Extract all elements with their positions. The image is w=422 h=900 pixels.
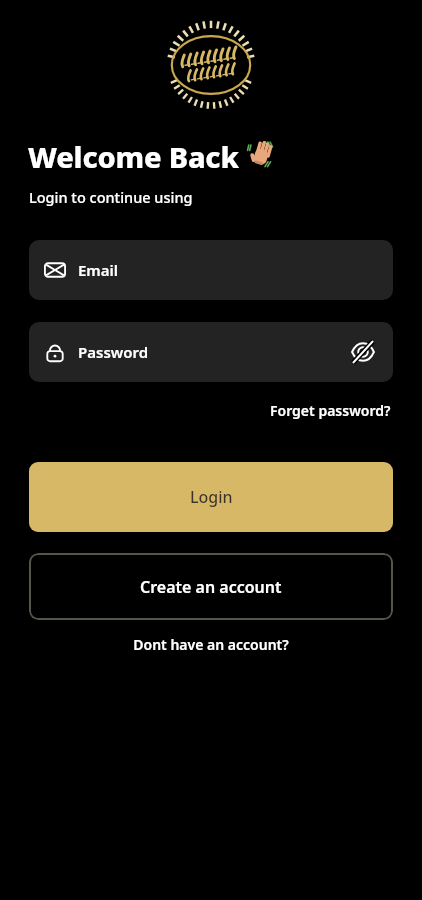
button[interactable]: Dont have an account? <box>129 632 293 657</box>
button[interactable]: Email <box>29 240 393 300</box>
staticText: Create an account <box>140 576 282 598</box>
button[interactable]: Show password <box>348 337 378 367</box>
staticText: Login to continue using <box>29 187 193 207</box>
button[interactable]: Password <box>29 322 393 382</box>
staticText: Welcome Back <box>28 137 239 176</box>
staticText: Email <box>78 260 119 280</box>
staticText: Login <box>190 486 233 508</box>
staticText: Dont have an account? <box>133 635 289 654</box>
button[interactable]: Forget password? <box>268 399 393 422</box>
button[interactable]: Login <box>29 462 393 532</box>
staticText: Password <box>78 342 149 362</box>
staticText: Forget password? <box>270 401 391 420</box>
button[interactable]: Create an account <box>29 553 393 620</box>
other: Melanated Audacity logo <box>162 16 260 114</box>
